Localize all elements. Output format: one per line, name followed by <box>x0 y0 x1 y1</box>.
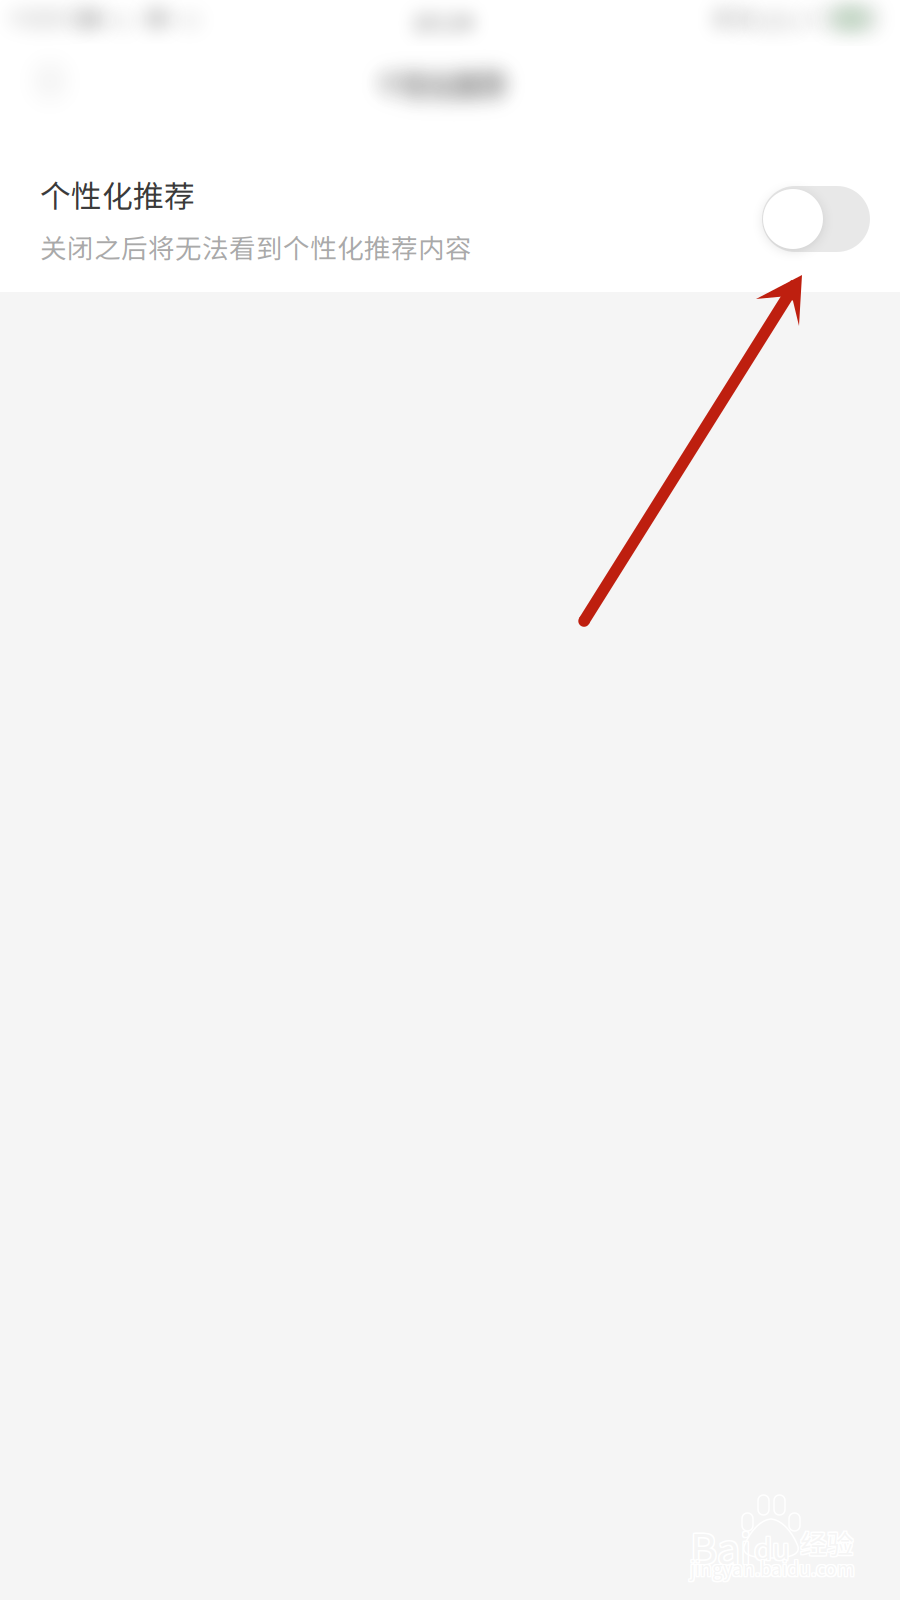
staticText: du <box>755 1526 791 1568</box>
staticText: 经验 <box>801 1522 855 1560</box>
staticText: jingyan.baidu.com <box>689 1554 854 1582</box>
staticText: jingyan.baidu.com <box>691 1555 856 1583</box>
staticText: Bai <box>689 1516 750 1576</box>
staticText: du <box>754 1527 790 1570</box>
staticText: jingyan.baidu.com <box>690 1555 855 1583</box>
staticText: 个性化推荐 <box>40 172 195 216</box>
button[interactable]: 个性化推荐 <box>0 146 900 292</box>
staticText: Bai <box>691 1516 752 1576</box>
staticText: 经验 <box>801 1523 855 1562</box>
staticText: Bai <box>691 1515 752 1575</box>
staticText: du <box>754 1526 790 1568</box>
staticText: 经验 <box>800 1524 854 1563</box>
staticText: du <box>754 1525 790 1567</box>
staticText: 经验 <box>799 1524 853 1563</box>
staticText: Bai <box>690 1516 751 1576</box>
staticText: 经验 <box>800 1522 854 1560</box>
staticText: Bai <box>690 1517 751 1577</box>
staticText: jingyan.baidu.com <box>689 1555 854 1583</box>
staticText: 经验 <box>799 1522 853 1560</box>
staticText: Bai <box>689 1515 750 1575</box>
staticText: jingyan.baidu.com <box>690 1554 855 1582</box>
staticText: 经验 <box>799 1523 853 1562</box>
staticText: jingyan.baidu.com <box>690 1553 855 1580</box>
staticText: jingyan.baidu.com <box>689 1553 854 1580</box>
staticText: 关闭之后将无法看到个性化推荐内容 <box>40 227 472 266</box>
staticText: Bai <box>690 1515 751 1575</box>
staticText: du <box>753 1525 789 1567</box>
staticText: du <box>753 1526 789 1568</box>
staticText: du <box>755 1527 791 1570</box>
staticText: du <box>755 1525 791 1567</box>
staticText: 经验 <box>801 1524 855 1563</box>
staticText: du <box>753 1527 789 1570</box>
staticText: 经验 <box>800 1523 854 1562</box>
staticText: Bai <box>691 1517 752 1577</box>
staticText: jingyan.baidu.com <box>691 1554 856 1582</box>
staticText: Bai <box>689 1517 750 1577</box>
staticText: jingyan.baidu.com <box>691 1553 856 1580</box>
